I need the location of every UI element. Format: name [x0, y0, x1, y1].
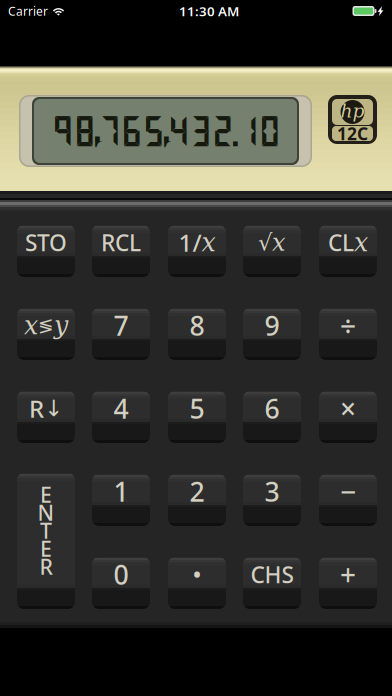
staticText: RCL [101, 227, 141, 257]
staticText: R [39, 552, 52, 581]
staticText: ↓ [44, 396, 63, 421]
staticText: 2 [189, 474, 204, 509]
button[interactable]: 3 [243, 474, 301, 526]
staticText: 12C [337, 122, 368, 145]
button[interactable]: square root of x [243, 225, 301, 277]
staticText: 1 [113, 474, 128, 509]
staticText: y [54, 311, 68, 340]
button[interactable]: reciprocal [168, 225, 226, 277]
button[interactable]: STO [17, 225, 75, 277]
button[interactable]: 8 [168, 308, 226, 360]
staticText: 0 [113, 557, 128, 592]
staticText: 98,765,432.10 [51, 113, 280, 149]
staticText: hp [340, 100, 364, 122]
staticText: ÷ [340, 307, 356, 344]
staticText: CL [328, 227, 354, 257]
staticText: E [40, 534, 52, 563]
staticText: R [29, 393, 44, 424]
button[interactable]: decimal point [168, 557, 226, 609]
button[interactable]: 9 [243, 308, 301, 360]
staticText: x [354, 228, 368, 257]
staticText: 8 [189, 308, 204, 343]
button[interactable]: multiply [319, 391, 377, 443]
staticText: 6 [264, 391, 279, 426]
staticText: − [340, 473, 356, 510]
staticText: x [24, 311, 38, 340]
staticText: + [340, 556, 356, 593]
staticText: x [201, 228, 215, 257]
staticText: Carrier [8, 3, 48, 19]
button[interactable]: 1 [92, 474, 150, 526]
button[interactable]: change sign [243, 557, 301, 609]
button[interactable]: minus [319, 474, 377, 526]
button[interactable]: x exchange y [17, 308, 75, 360]
button[interactable]: 0 [92, 557, 150, 609]
staticText: 3 [264, 474, 279, 509]
staticText: × [340, 390, 356, 427]
button[interactable]: ENTER [17, 473, 75, 609]
button[interactable]: 4 [92, 391, 150, 443]
button[interactable]: roll down [17, 391, 75, 443]
button[interactable]: divide [319, 308, 377, 360]
button[interactable]: 6 [243, 391, 301, 443]
button[interactable]: 7 [92, 308, 150, 360]
staticText: 5 [189, 391, 204, 426]
staticText: ≶ [38, 315, 54, 336]
staticText: √ [258, 230, 272, 255]
staticText: T [40, 516, 52, 545]
staticText: 11:30 AM [179, 2, 239, 20]
staticText: E [40, 480, 52, 509]
button[interactable]: plus [319, 557, 377, 609]
staticText: 9 [264, 308, 279, 343]
staticText: CHS [250, 559, 293, 589]
button[interactable]: 2 [168, 474, 226, 526]
button[interactable]: clear x [319, 225, 377, 277]
staticText: • [192, 559, 201, 590]
staticText: 7 [113, 308, 128, 343]
staticText: 1/ [178, 227, 201, 258]
staticText: x [272, 228, 286, 256]
staticText: STO [25, 227, 67, 257]
staticText: N [37, 498, 54, 527]
button[interactable]: RCL [92, 225, 150, 277]
staticText: 4 [113, 391, 128, 426]
button[interactable]: 5 [168, 391, 226, 443]
